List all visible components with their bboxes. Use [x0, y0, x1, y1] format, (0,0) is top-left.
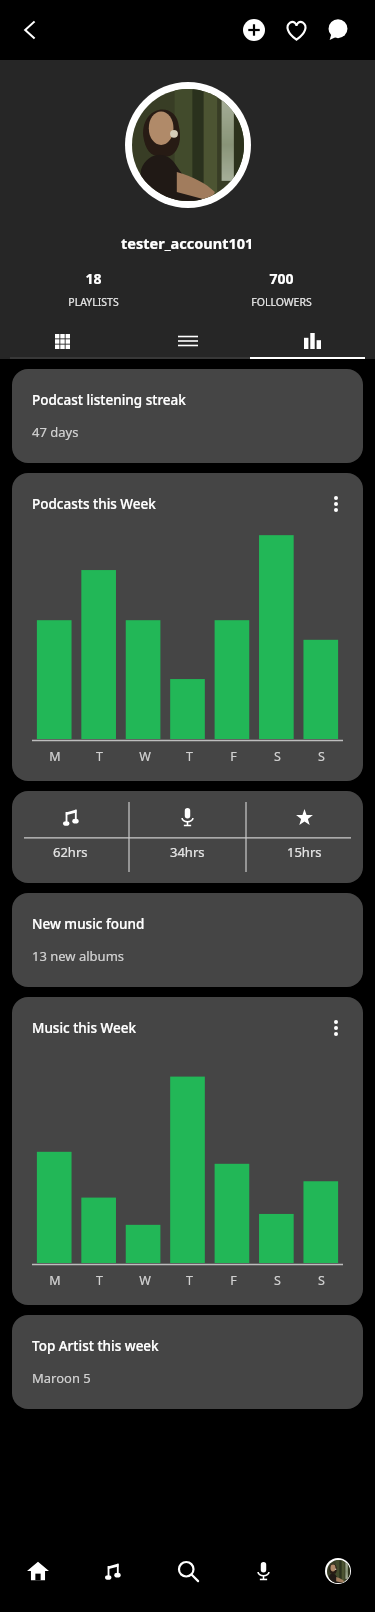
staticText: 700	[269, 269, 294, 288]
staticText: Top Artist this week	[32, 1337, 159, 1355]
staticText: S	[274, 1272, 281, 1289]
staticText: Music this Week	[32, 1019, 323, 1037]
staticText: F	[230, 748, 237, 765]
button[interactable]: Music	[75, 1530, 150, 1612]
staticText: 15hrs	[287, 843, 322, 861]
button[interactable]: Statistics	[250, 323, 375, 359]
staticText: PLAYLISTS	[68, 295, 119, 309]
staticText: tester_account101	[121, 233, 254, 253]
staticText: 13 new albums	[32, 947, 125, 965]
staticText: FOLLOWERS	[251, 295, 312, 309]
staticText: 62hrs	[53, 843, 88, 861]
button[interactable]: Back	[8, 8, 52, 52]
staticText: S	[318, 748, 325, 765]
staticText: 34hrs	[170, 843, 205, 861]
button[interactable]: Podcast hours	[129, 791, 246, 883]
button[interactable]: Top Artist this week	[12, 1315, 363, 1409]
button[interactable]: Profile	[300, 1530, 375, 1612]
button[interactable]: 700	[187, 269, 375, 309]
button[interactable]: Podcast listening streak	[12, 369, 363, 463]
staticText: F	[230, 1272, 237, 1289]
staticText: T	[96, 1272, 103, 1289]
button[interactable]: 18	[0, 269, 187, 309]
staticText: S	[318, 1272, 325, 1289]
button[interactable]: List view	[125, 323, 250, 359]
button[interactable]: Home	[0, 1530, 75, 1612]
staticText: T	[186, 1272, 193, 1289]
staticText: T	[96, 748, 103, 765]
button[interactable]: Music this Week	[12, 997, 363, 1305]
button[interactable]: Grid view	[0, 323, 125, 359]
button[interactable]: Favourites hours	[246, 791, 363, 883]
staticText: S	[274, 748, 281, 765]
button[interactable]: More options	[323, 491, 349, 517]
staticText: 47 days	[32, 423, 79, 441]
staticText: Podcast listening streak	[32, 391, 186, 409]
button[interactable]: Profile picture	[125, 82, 251, 208]
button[interactable]: Likes	[279, 13, 313, 47]
button[interactable]: More options	[323, 1015, 349, 1041]
button[interactable]: Messages	[321, 13, 355, 47]
staticText: Maroon 5	[32, 1369, 91, 1387]
staticText: New music found	[32, 915, 145, 933]
staticText: M	[49, 748, 61, 765]
button[interactable]: Add	[237, 13, 271, 47]
staticText: W	[139, 1272, 151, 1289]
button[interactable]: Music hours	[12, 791, 129, 883]
staticText: W	[139, 748, 151, 765]
button[interactable]: Podcasts this Week	[12, 473, 363, 781]
staticText: Podcasts this Week	[32, 495, 323, 513]
button[interactable]: Search	[150, 1530, 225, 1612]
staticText: M	[49, 1272, 61, 1289]
button[interactable]: New music found	[12, 893, 363, 987]
staticText: 18	[85, 269, 102, 288]
button[interactable]: Voice search	[225, 1530, 300, 1612]
staticText: T	[186, 748, 193, 765]
